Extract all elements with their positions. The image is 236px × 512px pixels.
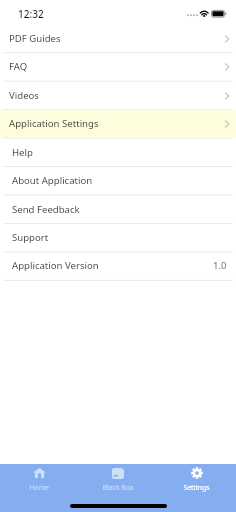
other: Settings — [191, 467, 203, 479]
button[interactable]: Send Feedback — [0, 195, 236, 223]
staticText: Application Version — [12, 259, 99, 272]
button[interactable]: Settings — [157, 464, 236, 512]
staticText: About Application — [12, 174, 93, 187]
button[interactable]: Videos — [0, 81, 236, 109]
staticText: Black Box — [102, 483, 134, 492]
other: Black Box — [112, 468, 124, 479]
staticText: Application Settings — [9, 117, 99, 130]
staticText: Help — [12, 146, 33, 159]
staticText: Support — [12, 231, 49, 244]
button[interactable]: Support — [0, 223, 236, 251]
button[interactable]: PDF Guides — [0, 24, 236, 52]
staticText: 12:32 — [18, 7, 44, 21]
button[interactable]: Home — [0, 464, 78, 512]
staticText: FAQ — [9, 60, 28, 73]
button[interactable]: Help — [0, 138, 236, 166]
staticText: Send Feedback — [12, 203, 80, 216]
button[interactable]: About Application — [0, 166, 236, 194]
staticText: Settings — [183, 483, 210, 492]
button[interactable]: Application Settings — [0, 109, 236, 137]
button[interactable]: FAQ — [0, 52, 236, 80]
button[interactable]: Black Box — [78, 464, 157, 512]
other: Home — [33, 468, 46, 478]
button[interactable]: Application Version — [0, 251, 236, 279]
staticText: 1.0 — [213, 259, 227, 272]
staticText: Home — [29, 483, 49, 492]
staticText: Videos — [9, 89, 39, 102]
staticText: PDF Guides — [9, 32, 61, 45]
